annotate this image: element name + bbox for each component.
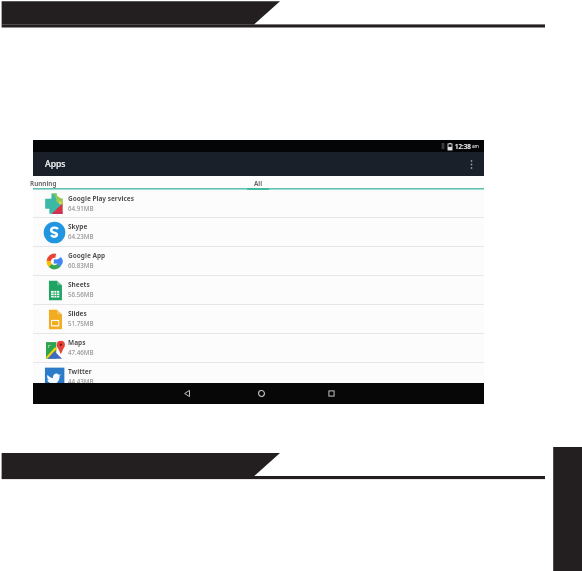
staticText: 51.75MB [68, 319, 94, 327]
button[interactable]: Google App [33, 247, 484, 275]
button[interactable]: Maps [33, 334, 484, 362]
button[interactable]: Running [33, 176, 63, 190]
button[interactable]: Back [173, 383, 201, 404]
button[interactable]: Skype [33, 218, 484, 246]
button[interactable]: Google Play services [33, 190, 484, 217]
staticText: 12:38 [455, 142, 471, 150]
staticText: Running [30, 179, 57, 188]
button[interactable]: All [244, 176, 272, 190]
staticText: am [472, 143, 479, 149]
button[interactable]: More options [458, 152, 484, 176]
staticText: Twitter [68, 367, 92, 376]
staticText: Skype [68, 222, 88, 231]
staticText: 60.83MB [68, 261, 94, 269]
button[interactable]: Recent apps [317, 383, 345, 404]
staticText: 56.56MB [68, 290, 94, 298]
staticText: Slides [68, 309, 87, 318]
staticText: Apps [45, 158, 66, 170]
button[interactable]: Sheets [33, 276, 484, 304]
staticText: Sheets [68, 280, 90, 289]
staticText: Google App [68, 251, 106, 260]
button[interactable]: Twitter [33, 363, 484, 391]
staticText: 47.46MB [68, 348, 94, 356]
staticText: All [254, 179, 263, 188]
staticText: 64.91MB [68, 204, 94, 212]
staticText: Maps [68, 338, 86, 347]
button[interactable]: Slides [33, 305, 484, 333]
staticText: 64.23MB [68, 232, 94, 240]
button[interactable]: Home [247, 383, 275, 404]
staticText: Google Play services [68, 194, 134, 203]
staticText: 44.43MB [68, 377, 94, 385]
